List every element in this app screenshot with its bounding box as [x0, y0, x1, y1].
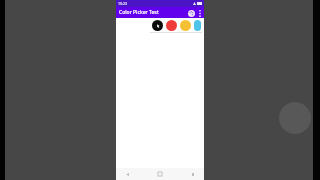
staticText: Color Picker Test: [119, 9, 159, 16]
button[interactable]: Red: [166, 20, 177, 31]
button[interactable]: Palette: [187, 9, 196, 18]
button[interactable]: Back: [122, 169, 132, 179]
button[interactable]: Light blue: [194, 20, 201, 31]
button[interactable]: Home: [155, 169, 165, 179]
staticText: 10:23: [118, 1, 127, 6]
button[interactable]: Amber: [180, 20, 191, 31]
button[interactable]: Recents: [188, 169, 198, 179]
button[interactable]: More options: [196, 8, 203, 18]
button[interactable]: Black: [152, 20, 163, 31]
